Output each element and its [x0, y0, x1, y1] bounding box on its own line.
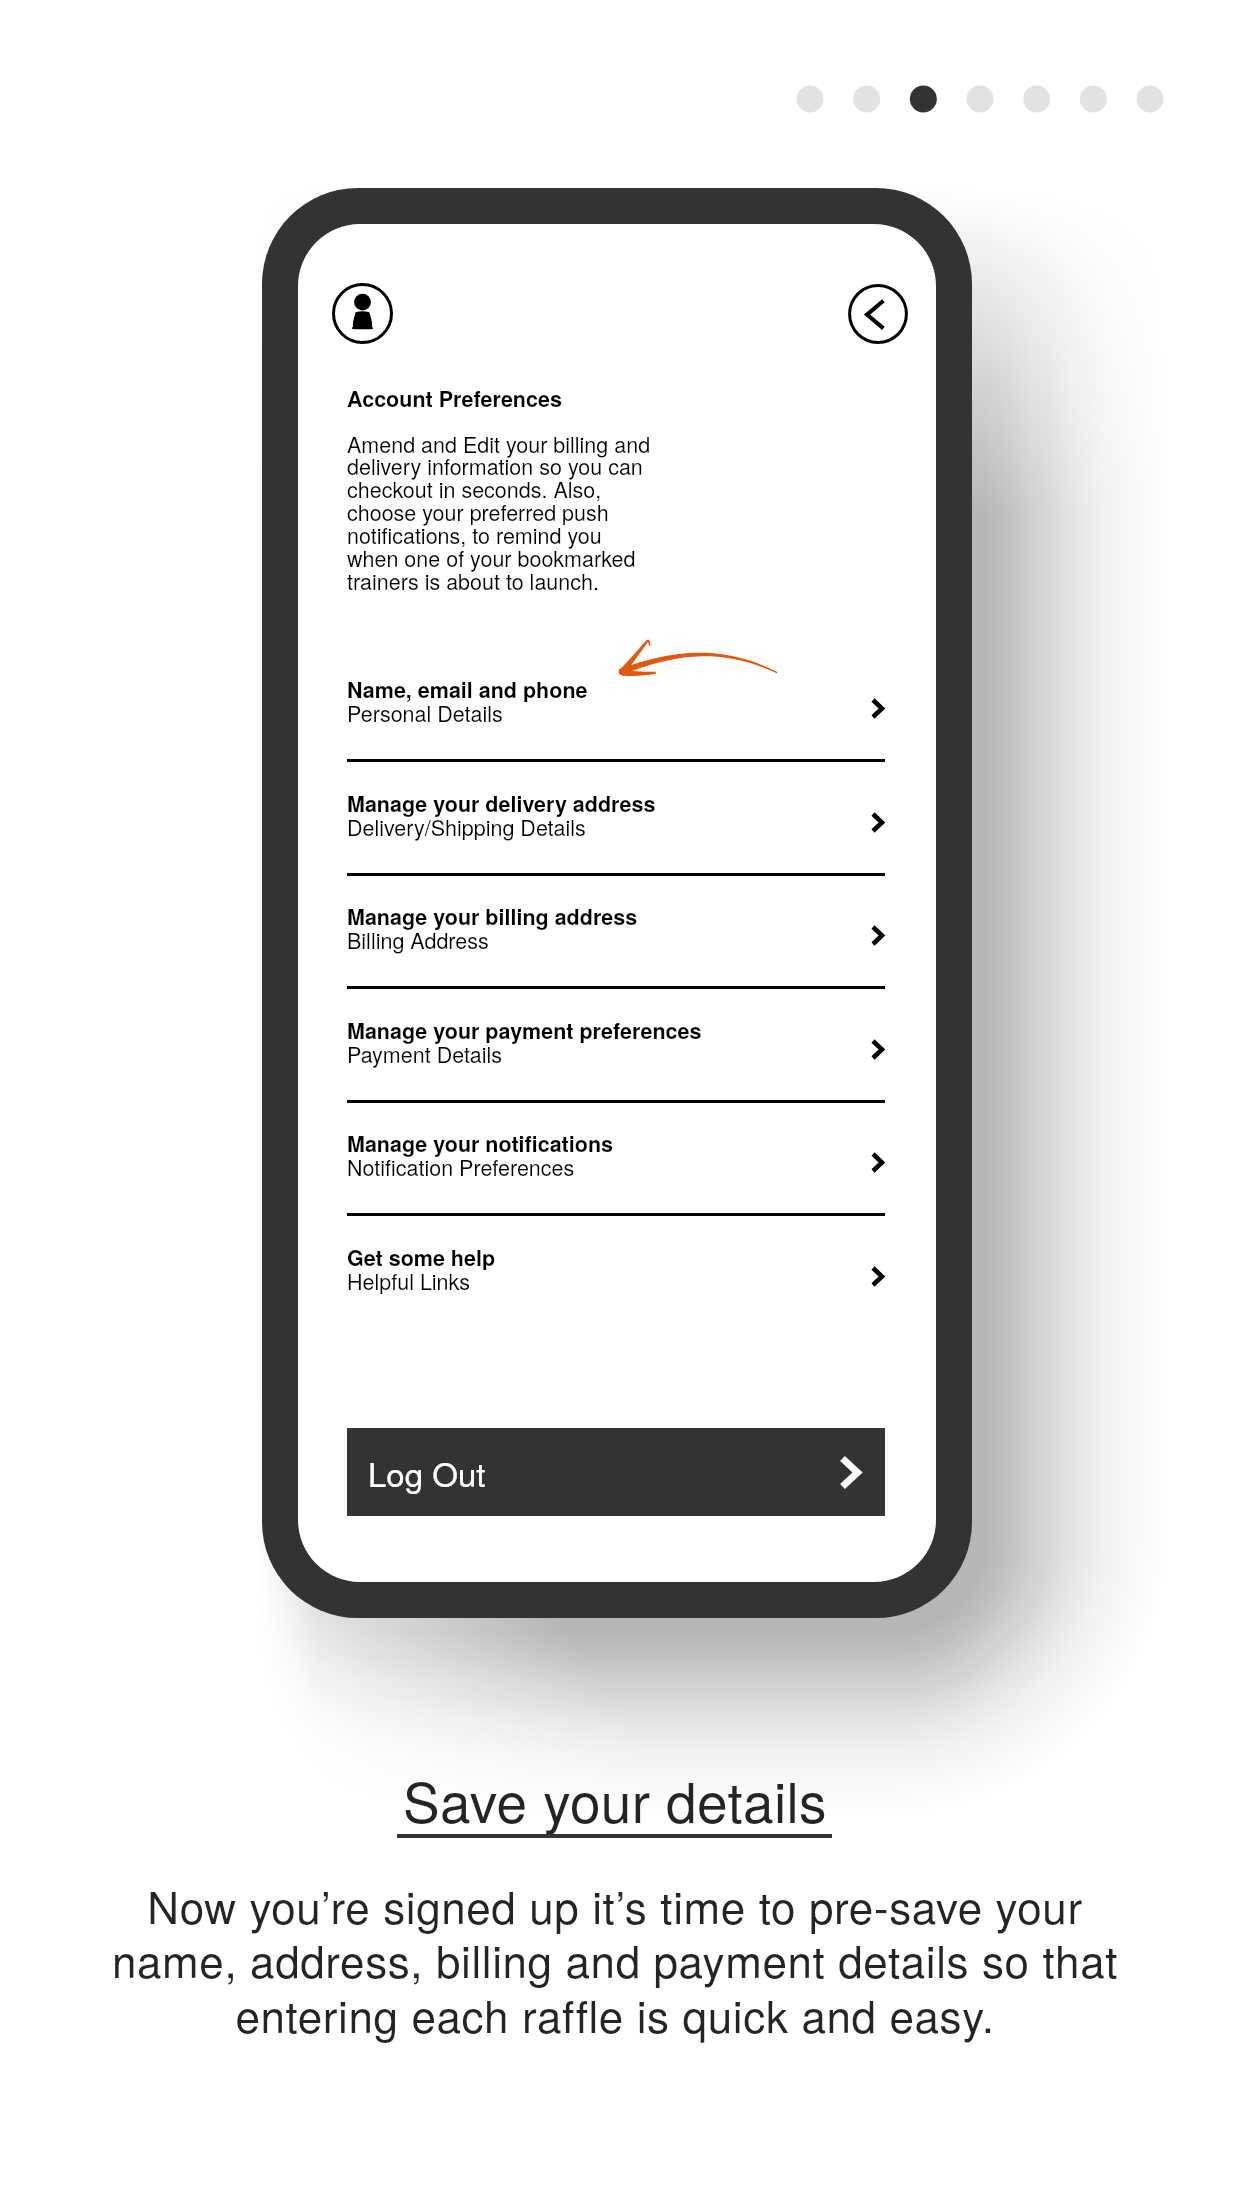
button[interactable]: Name, email and phone — [347, 674, 885, 787]
button[interactable]: Manage your delivery address — [347, 788, 885, 901]
button[interactable]: Get some help — [347, 1242, 885, 1355]
staticText: Notification Preferences — [347, 1151, 575, 1182]
button[interactable]: Manage your notifications — [347, 1128, 885, 1241]
staticText: Manage your notifications — [347, 1128, 613, 1159]
button[interactable]: Manage your payment preferences — [347, 1015, 885, 1128]
staticText: Delivery/Shipping Details — [347, 811, 586, 842]
staticText: Get some help — [347, 1242, 496, 1273]
staticText: Save your details — [403, 1760, 827, 1839]
staticText: Personal Details — [347, 697, 503, 728]
staticText: Payment Details — [347, 1038, 503, 1069]
staticText: Now you’re signed up it’s time to pre-sa… — [100, 1873, 1130, 2045]
staticText: Amend and Edit your billing and delivery… — [347, 428, 659, 596]
staticText: Account Preferences — [347, 383, 562, 414]
staticText: Log Out — [368, 1449, 486, 1496]
staticText: Helpful Links — [347, 1265, 470, 1296]
staticText: Manage your billing address — [347, 901, 638, 932]
button[interactable]: Back — [848, 284, 908, 344]
button[interactable]: Account — [332, 283, 393, 344]
staticText: Billing Address — [347, 924, 489, 955]
staticText: Name, email and phone — [347, 674, 588, 705]
staticText: Manage your payment preferences — [347, 1015, 702, 1046]
button[interactable]: Log Out — [347, 1428, 885, 1516]
staticText: Manage your delivery address — [347, 788, 656, 819]
button[interactable]: Manage your billing address — [347, 901, 885, 1014]
